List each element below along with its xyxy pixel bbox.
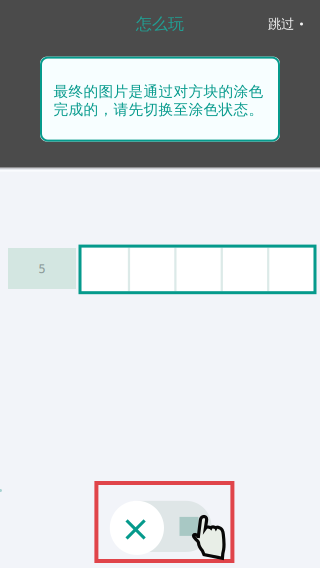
staticText: 怎么玩	[136, 14, 184, 34]
button[interactable]: Switch to paint mode	[94, 481, 234, 563]
button[interactable]: 跳过	[268, 5, 320, 43]
staticText: 跳过	[268, 16, 294, 32]
staticText: 5	[38, 260, 45, 276]
staticText: 最终的图片是通过对方块的涂色完成的，请先切换至涂色状态。	[53, 83, 263, 119]
